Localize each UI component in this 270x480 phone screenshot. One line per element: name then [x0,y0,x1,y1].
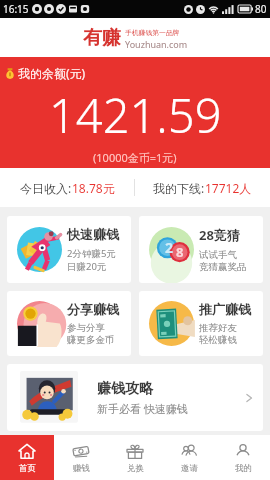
button[interactable]: 我的 [216,435,270,480]
staticText: 8 [176,243,184,261]
staticText: 80 [255,2,267,16]
staticText: 17712人 [205,180,252,196]
staticText: 轻松赚钱 [199,334,237,346]
staticText: 推荐好友 [199,322,237,334]
button[interactable]: 推广赚钱 [139,291,263,356]
staticText: 日赚20元 [67,260,107,273]
button[interactable]: 邀请 [162,435,216,480]
staticText: 推广赚钱 [199,301,251,317]
button[interactable]: 赚钱 [54,435,108,480]
staticText: 参与分享 [67,322,105,334]
staticText: 2 [165,238,174,257]
button[interactable]: 我的下线: [135,168,270,207]
button[interactable]: 兑换 [108,435,162,480]
staticText: Youzhuan.com [125,38,188,50]
staticText: 今日收入: [20,180,72,196]
staticText: 兑换 [127,463,144,474]
button[interactable]: 赚钱攻略 [7,364,263,431]
staticText: 18.78元 [72,180,115,196]
button[interactable]: 快速赚钱 [7,216,131,283]
button[interactable]: 今日收入: [0,168,134,207]
button[interactable]: 分享赚钱 [7,291,131,356]
staticText: 试试手气 [199,249,237,261]
staticText: 分享赚钱 [67,301,119,317]
staticText: 手机赚钱第一品牌 [125,28,180,37]
staticText: 快速赚钱 [67,226,119,242]
staticText: 赚钱 [73,463,90,474]
staticText: 我的下线: [153,180,205,196]
staticText: 2分钟赚5元 [67,247,116,260]
staticText: 有赚 [83,26,121,50]
staticText: 我的 [235,463,252,474]
staticText: 新手必看 快速赚钱 [97,401,188,416]
staticText: 赚更多金币 [67,334,115,346]
staticText: 16:15 [3,2,29,16]
button[interactable]: 2 [139,216,263,283]
staticText: 我的余额(元) [18,65,86,81]
staticText: 28竞猜 [199,226,240,244]
staticText: 竞猜赢奖品 [199,261,247,273]
button[interactable]: 首页 [0,435,54,480]
staticText: 1421.59 [49,83,222,147]
staticText: (10000金币=1元) [93,150,177,165]
staticText: 首页 [19,463,36,474]
staticText: 赚钱攻略 [97,380,153,398]
staticText: 邀请 [181,463,198,474]
